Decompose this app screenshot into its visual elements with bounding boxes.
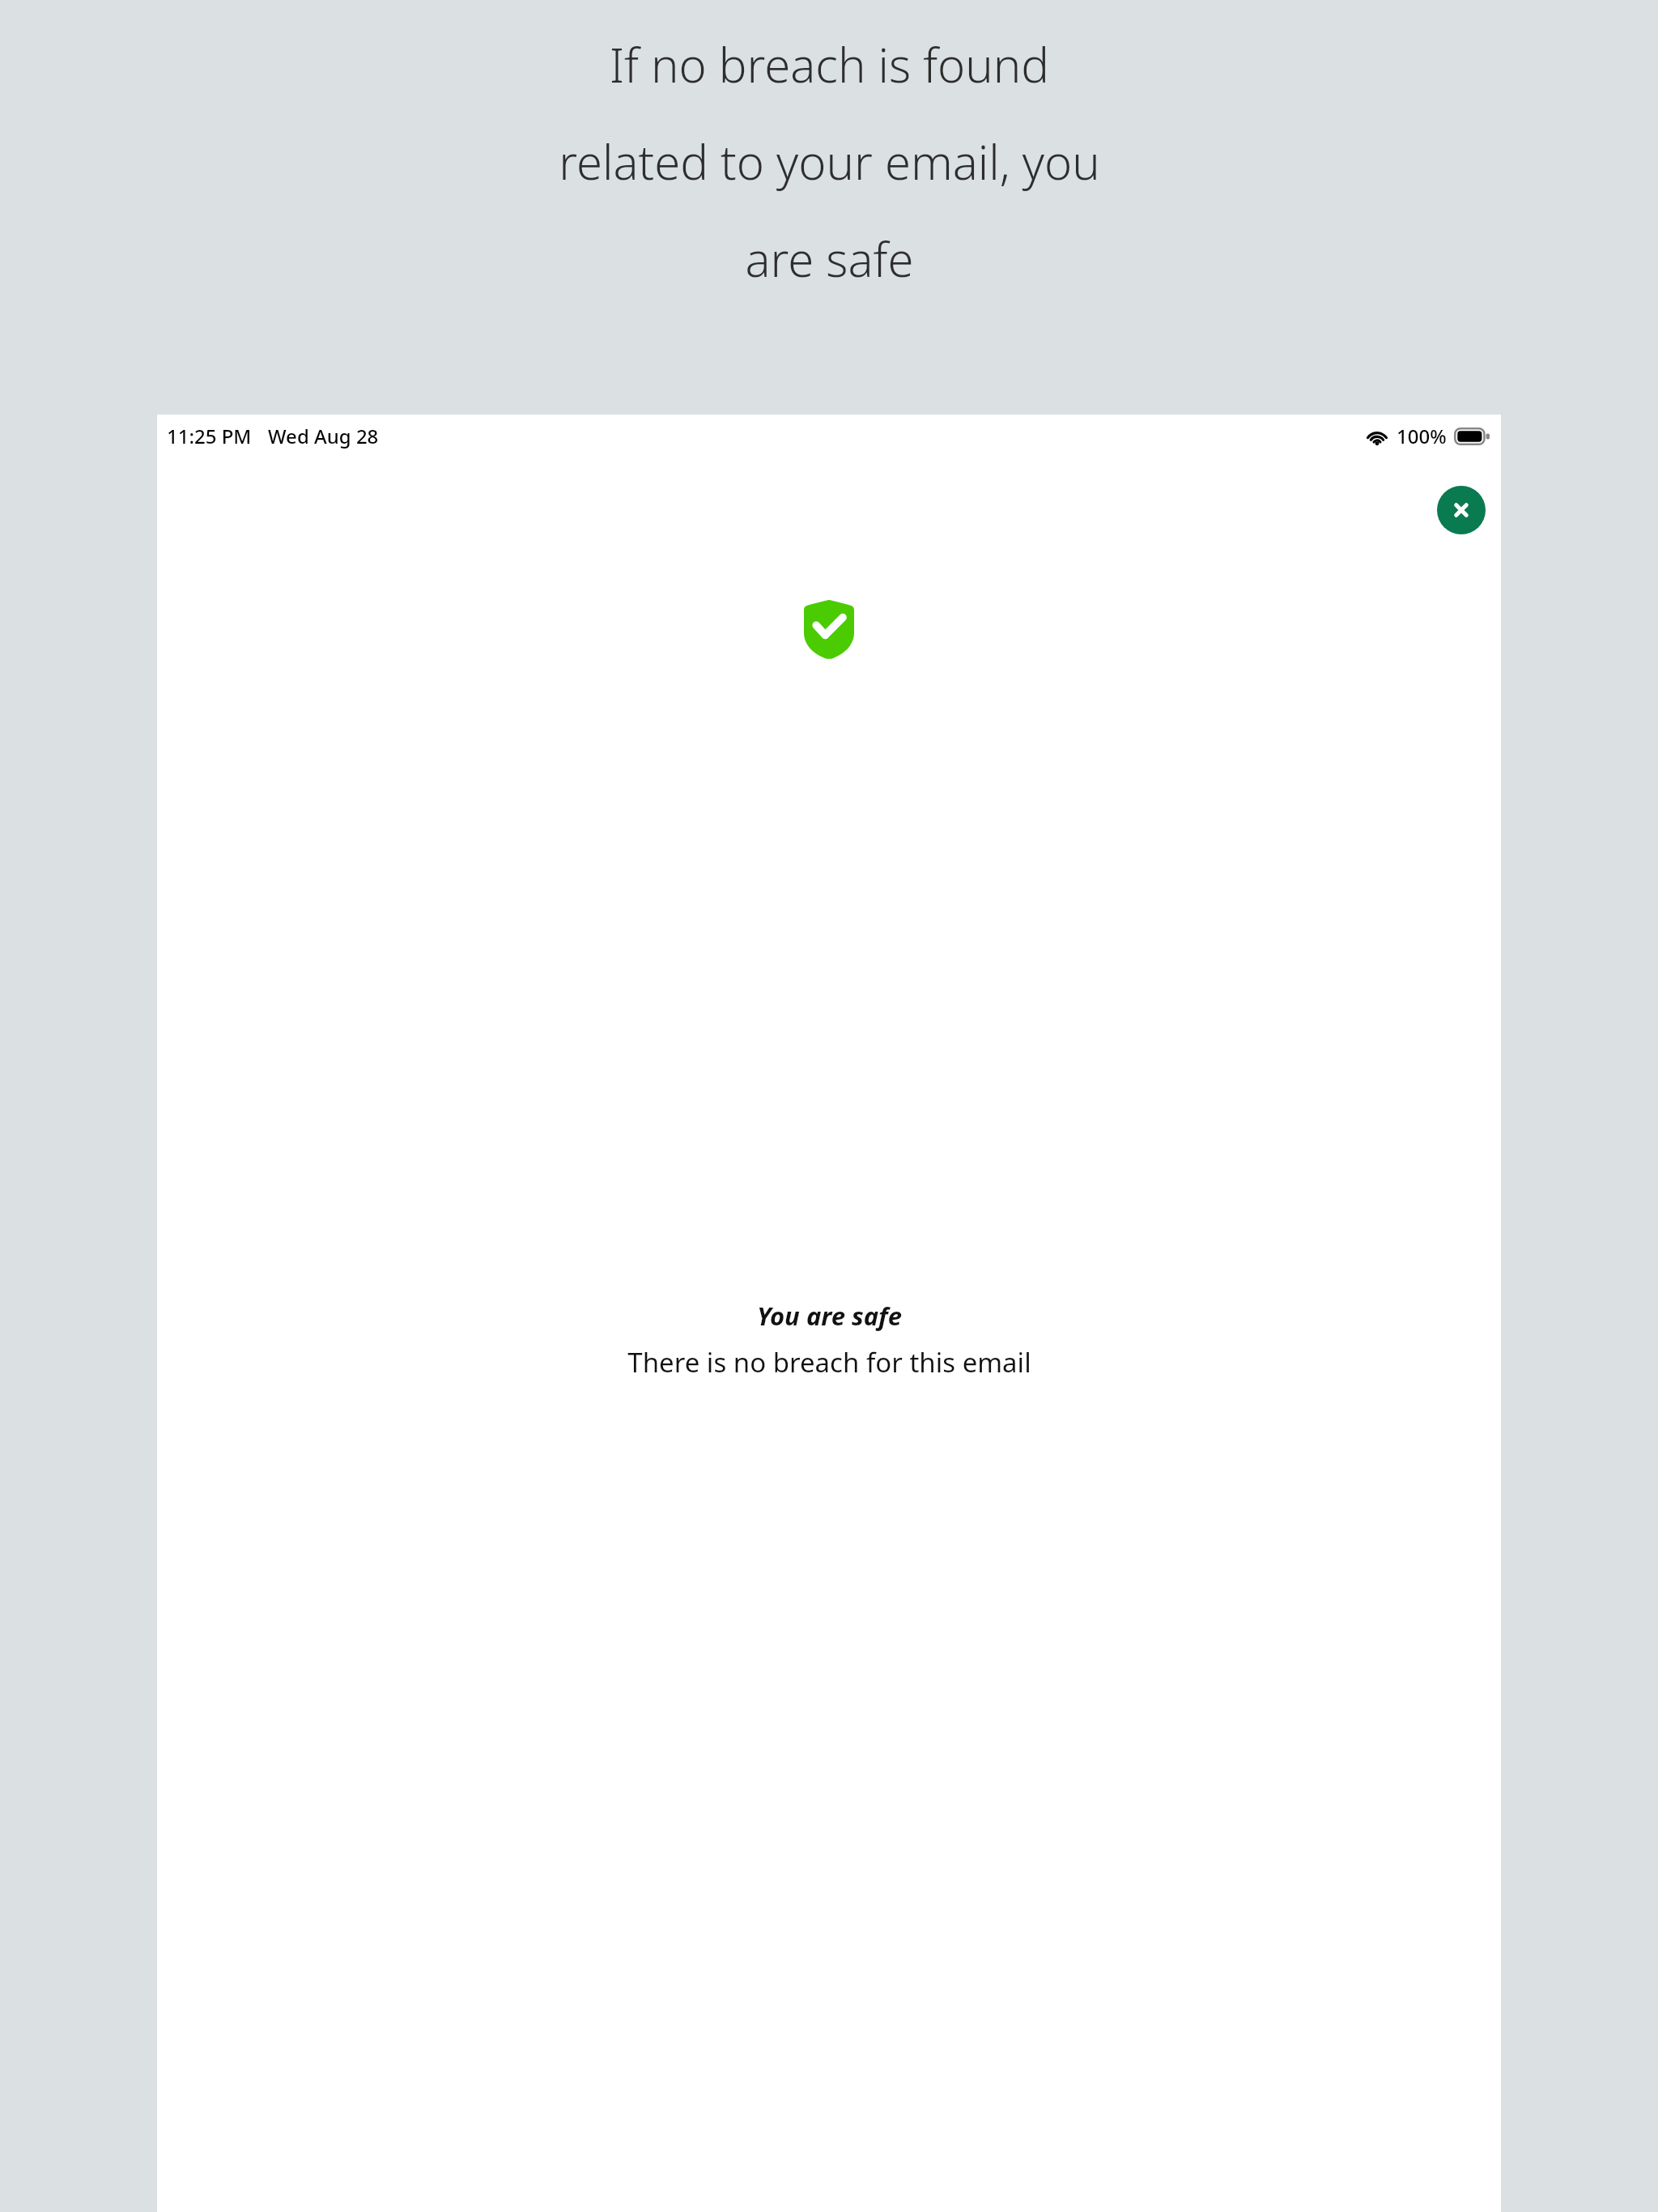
staticText: 11:25 PM [167, 423, 252, 449]
button[interactable]: Close [1437, 486, 1486, 534]
staticText: If no breach is found related to your em… [559, 32, 1100, 291]
staticText: You are safe [757, 1299, 902, 1333]
staticText: There is no breach for this email [627, 1344, 1031, 1380]
staticText: 100% [1397, 423, 1447, 449]
staticText: Wed Aug 28 [268, 423, 379, 449]
